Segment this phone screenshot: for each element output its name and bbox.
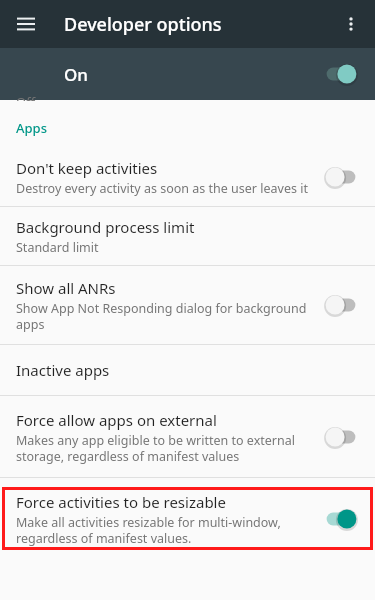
staticText: Make all activities resizable for multi-…	[16, 514, 313, 546]
button[interactable]: Force activities to be resizable	[2, 487, 373, 550]
staticText: Off	[16, 93, 36, 101]
staticText: Standard limit	[16, 239, 99, 256]
staticText: Apps	[16, 119, 47, 137]
button[interactable]: Force allow apps on external	[0, 396, 375, 477]
button[interactable]: Background process limit	[0, 207, 375, 265]
staticText: On	[64, 63, 323, 86]
staticText: Show App Not Responding dialog for backg…	[16, 300, 313, 332]
staticText: Force allow apps on external	[16, 410, 217, 430]
staticText: Inactive apps	[16, 360, 110, 380]
button[interactable]: Show all ANRs	[0, 266, 375, 344]
button[interactable]: On	[0, 48, 375, 100]
staticText: Destroy every activity as soon as the us…	[16, 180, 308, 197]
staticText: Makes any app eligible to be written to …	[16, 432, 313, 464]
button[interactable]: Don't keep activities	[0, 148, 375, 206]
button[interactable]: Inactive apps	[0, 345, 375, 395]
staticText: Force activities to be resizable	[16, 492, 226, 512]
staticText: Don't keep activities	[16, 158, 158, 178]
button[interactable]: Open navigation drawer	[6, 4, 46, 44]
staticText: Background process limit	[16, 217, 195, 237]
button[interactable]: More options	[331, 4, 371, 44]
staticText: Show all ANRs	[16, 278, 116, 298]
staticText: Developer options	[64, 12, 222, 37]
